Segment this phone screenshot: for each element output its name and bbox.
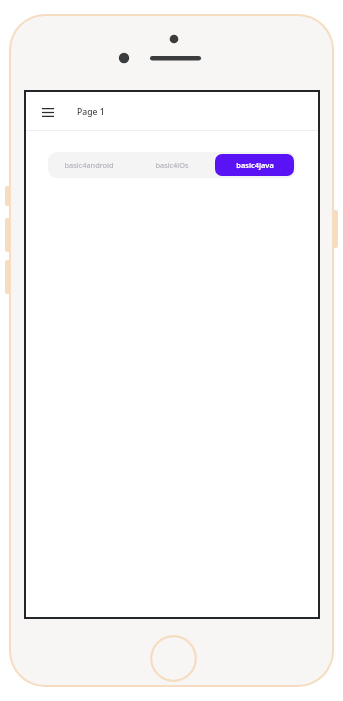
button[interactable]: basic4iOs — [132, 154, 211, 176]
staticText: basic4iOs — [155, 160, 189, 170]
staticText: basic4java — [236, 160, 274, 170]
staticText: Page 1 — [77, 106, 105, 118]
button[interactable]: Open navigation drawer — [36, 100, 60, 124]
button[interactable]: basic4java — [215, 154, 294, 176]
button[interactable]: basic4android — [50, 154, 128, 176]
staticText: basic4android — [64, 160, 114, 170]
